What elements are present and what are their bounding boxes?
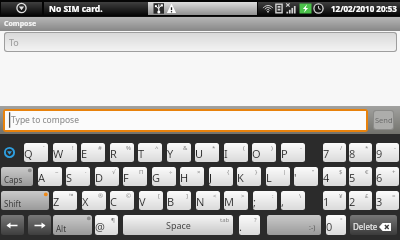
- staticText: D: [95, 170, 104, 185]
- button[interactable]: I: [224, 143, 248, 162]
- button[interactable]: U: [195, 143, 219, 162]
- staticText: No SIM card.: [49, 3, 103, 15]
- staticText: 1: [323, 194, 330, 209]
- button[interactable]: D: [95, 167, 119, 186]
- button[interactable]: Notifications: [1, 2, 42, 15]
- staticText: &: [183, 144, 188, 152]
- button[interactable]: S: [66, 167, 90, 186]
- staticText: X: [82, 194, 89, 209]
- staticText: ©: [126, 192, 131, 200]
- button[interactable]: 8: [349, 143, 372, 162]
- button[interactable]: Shift: [1, 191, 49, 210]
- staticText: Compose: [4, 19, 37, 29]
- button[interactable]: Y: [167, 143, 191, 162]
- staticText: C: [110, 194, 117, 209]
- button[interactable]: .: [239, 215, 260, 235]
- button[interactable]: A: [38, 167, 62, 186]
- button[interactable]: 4: [323, 167, 346, 186]
- staticText: 7: [323, 146, 330, 161]
- staticText: !: [72, 144, 74, 152]
- staticText: B: [167, 194, 175, 209]
- button[interactable]: Z: [53, 191, 77, 210]
- staticText: ™: [69, 192, 74, 200]
- button[interactable]: X: [82, 191, 106, 210]
- staticText: <: [213, 192, 217, 200]
- button[interactable]: Move cursor left: [1, 215, 24, 235]
- staticText: Shift: [4, 198, 22, 209]
- staticText: G: [152, 170, 161, 185]
- button[interactable]: Emoticons: [267, 215, 321, 235]
- button[interactable]: N: [196, 191, 220, 210]
- button[interactable]: V: [139, 191, 163, 210]
- button[interactable]: P: [281, 143, 305, 162]
- button[interactable]: O: [252, 143, 276, 162]
- button[interactable]: Move cursor right: [28, 215, 51, 235]
- button[interactable]: 5: [349, 167, 372, 186]
- staticText: =: [392, 192, 396, 200]
- button[interactable]: To: [5, 33, 396, 51]
- staticText: `: [43, 144, 45, 152]
- staticText: }: [255, 168, 258, 176]
- staticText: 3: [376, 194, 383, 209]
- staticText: W: [53, 146, 64, 161]
- staticText: 6: [376, 170, 383, 185]
- button[interactable]: 1: [323, 191, 346, 210]
- staticText: U: [195, 146, 204, 161]
- staticText: tab: [220, 216, 230, 224]
- button[interactable]: R: [110, 143, 134, 162]
- button[interactable]: ,: [281, 191, 305, 210]
- staticText: O: [252, 146, 261, 161]
- button[interactable]: Q: [24, 143, 48, 162]
- button[interactable]: M: [224, 191, 248, 210]
- button[interactable]: Alt: [53, 215, 92, 235]
- button[interactable]: 6: [376, 167, 399, 186]
- button[interactable]: Delete: [350, 215, 397, 235]
- button[interactable]: Space: [123, 215, 233, 235]
- staticText: 12/02/2010 20:53: [331, 3, 397, 14]
- button[interactable]: G: [152, 167, 176, 186]
- staticText: |: [283, 168, 287, 176]
- button[interactable]: H: [180, 167, 204, 186]
- button[interactable]: C: [110, 191, 134, 210]
- staticText: 2: [349, 194, 356, 209]
- staticText: Delete: [353, 221, 378, 232]
- staticText: [: [158, 192, 160, 200]
- staticText: ;: [253, 194, 256, 209]
- button[interactable]: Hide keyboard: [1, 144, 18, 161]
- staticText: Space: [166, 219, 191, 231]
- button[interactable]: E: [81, 143, 105, 162]
- staticText: \: [299, 192, 302, 200]
- staticText: Caps: [4, 174, 23, 185]
- button[interactable]: 2: [349, 191, 372, 210]
- staticText: Z: [53, 194, 60, 209]
- staticText: ): [271, 144, 273, 152]
- button[interactable]: F: [123, 167, 147, 186]
- staticText: .: [239, 219, 242, 234]
- button[interactable]: W: [53, 143, 77, 162]
- staticText: L: [266, 170, 272, 185]
- staticText: ¶: [111, 216, 115, 224]
- button[interactable]: K: [237, 167, 261, 186]
- staticText: M: [224, 194, 234, 209]
- button[interactable]: ': [294, 167, 318, 186]
- button[interactable]: T: [138, 143, 162, 162]
- staticText: ': [294, 170, 297, 185]
- staticText: ]: [186, 192, 188, 200]
- button[interactable]: ;: [253, 191, 277, 210]
- button[interactable]: 3: [376, 191, 399, 210]
- button[interactable]: 7: [323, 143, 346, 162]
- button[interactable]: Caps: [1, 167, 33, 186]
- button[interactable]: L: [266, 167, 290, 186]
- button[interactable]: J: [209, 167, 233, 186]
- button[interactable]: 9: [376, 143, 399, 162]
- staticText: Y: [167, 146, 174, 161]
- button[interactable]: 0: [326, 215, 346, 235]
- button[interactable]: Type to compose: [5, 111, 366, 130]
- button[interactable]: Send: [374, 111, 393, 129]
- button[interactable]: @: [95, 215, 118, 235]
- staticText: V: [139, 194, 146, 209]
- staticText: °: [340, 216, 343, 224]
- button[interactable]: B: [167, 191, 191, 210]
- staticText: ×: [197, 168, 201, 176]
- staticText: I: [224, 146, 228, 161]
